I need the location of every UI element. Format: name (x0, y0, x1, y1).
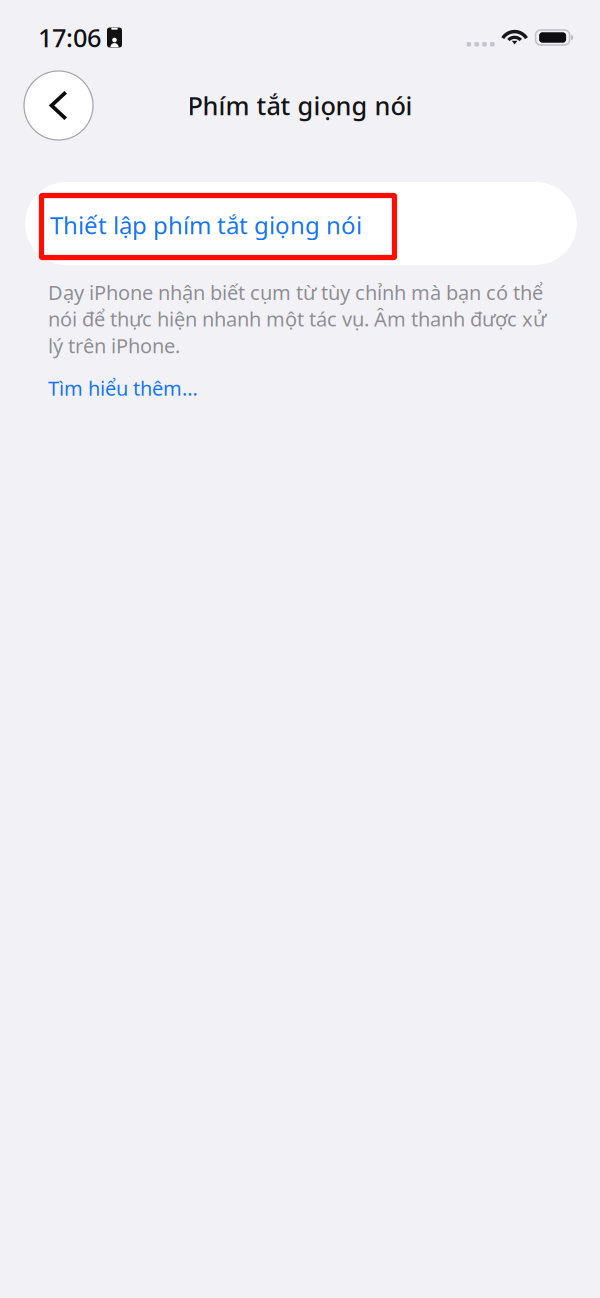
button[interactable]: Back (24, 71, 93, 140)
staticText: 17:06 (38, 21, 101, 54)
staticText: Dạy iPhone nhận biết cụm từ tùy chỉnh mà… (48, 279, 546, 359)
staticText: Phím tắt giọng nói (187, 89, 412, 122)
button[interactable]: Tìm hiểu thêm… (48, 375, 198, 401)
staticText: Thiết lập phím tắt giọng nói (50, 209, 362, 241)
button[interactable]: Thiết lập phím tắt giọng nói (25, 182, 577, 265)
staticText: Tìm hiểu thêm… (48, 375, 198, 401)
